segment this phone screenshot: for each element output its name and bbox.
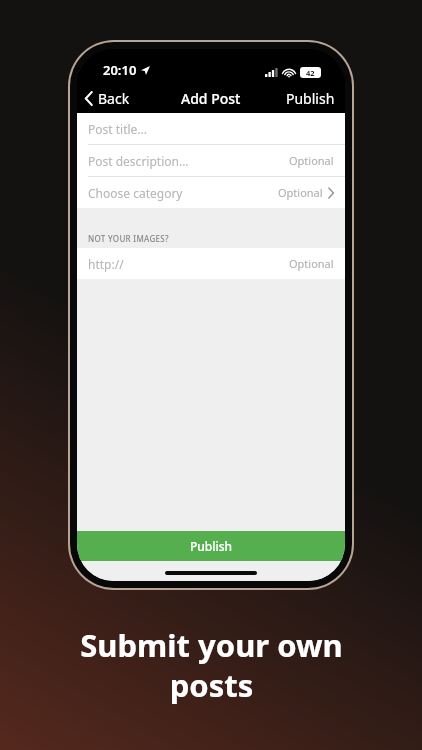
staticText: Back	[98, 89, 130, 108]
staticText: Optional	[278, 185, 323, 200]
staticText: Optional	[289, 153, 334, 168]
button[interactable]: Post description...	[77, 145, 345, 176]
staticText: Choose category	[88, 185, 183, 201]
staticText: Publish	[286, 89, 335, 108]
staticText: Publish	[190, 538, 233, 554]
staticText: Post title...	[88, 121, 147, 137]
button[interactable]: http://	[77, 248, 345, 279]
staticText: http://	[88, 256, 124, 272]
button[interactable]: Back	[77, 85, 140, 112]
other: Choose category	[328, 188, 334, 198]
button[interactable]: Publish	[276, 85, 345, 112]
staticText: Submit your own posts	[80, 624, 343, 706]
staticText: NOT YOUR IMAGES?	[88, 233, 169, 244]
staticText: Add Post	[181, 89, 241, 108]
button[interactable]: Choose category	[77, 177, 345, 208]
button[interactable]: Post title...	[77, 113, 345, 144]
staticText: Optional	[289, 256, 334, 271]
button[interactable]: Publish	[77, 531, 345, 561]
staticText: Post description...	[88, 153, 189, 169]
staticText: 20:10	[103, 61, 137, 79]
staticText: 42	[306, 68, 315, 78]
